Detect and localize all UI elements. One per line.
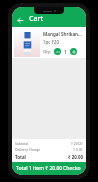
staticText: Cart <box>29 14 44 24</box>
staticText: 1 <box>64 49 67 55</box>
button[interactable]: Mangal Shrikant () <box>12 27 86 58</box>
button[interactable]: Decrease quantity <box>54 48 61 55</box>
staticText: ₹ 20.00 <box>71 141 83 146</box>
button[interactable]: Increase quantity <box>70 48 77 55</box>
staticText: Delivery Charge <box>15 147 41 152</box>
staticText: Mangal Shrikant () <box>43 31 83 37</box>
staticText: Checkout <box>63 165 82 172</box>
staticText: Subtotal <box>15 141 29 146</box>
staticText: Qty: <box>43 49 52 55</box>
button[interactable]: Total 1 item ₹ 20.00 <box>12 162 86 175</box>
staticText: ₹ 0.00 <box>73 147 83 152</box>
button[interactable]: Back <box>16 16 25 25</box>
staticText: ₹ 20.00 <box>68 154 83 160</box>
staticText: 1pc ₹20 <box>43 39 59 45</box>
staticText: Total 1 item ₹ 20.00 <box>16 165 63 172</box>
staticText: Total <box>15 154 26 160</box>
